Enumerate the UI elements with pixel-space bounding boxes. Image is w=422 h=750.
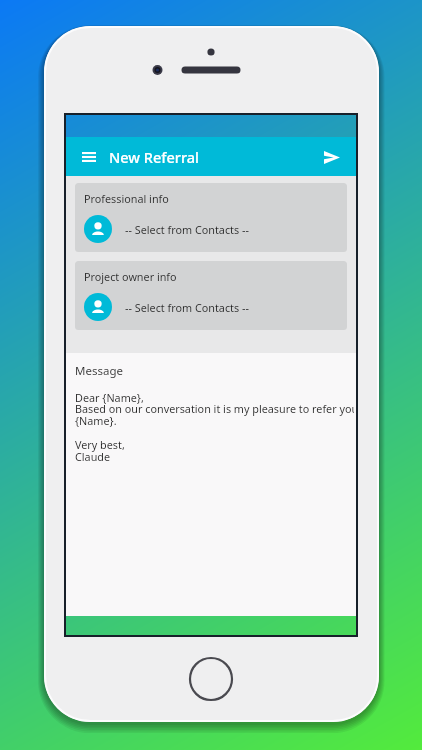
staticText: -- Select from Contacts -- (125, 222, 249, 237)
staticText: Dear {Name}, Based on our conversation i… (75, 390, 354, 465)
staticText: -- Select from Contacts -- (125, 300, 249, 315)
staticText: Project owner info (84, 269, 177, 284)
staticText: New Referral (109, 147, 199, 167)
button[interactable]: Project owner info (75, 261, 347, 330)
staticText: Message (75, 363, 123, 379)
button[interactable]: Open navigation menu (74, 142, 104, 172)
button[interactable]: Professional info (75, 183, 347, 252)
button[interactable]: Send referral (317, 142, 347, 172)
staticText: Professional info (84, 191, 169, 206)
